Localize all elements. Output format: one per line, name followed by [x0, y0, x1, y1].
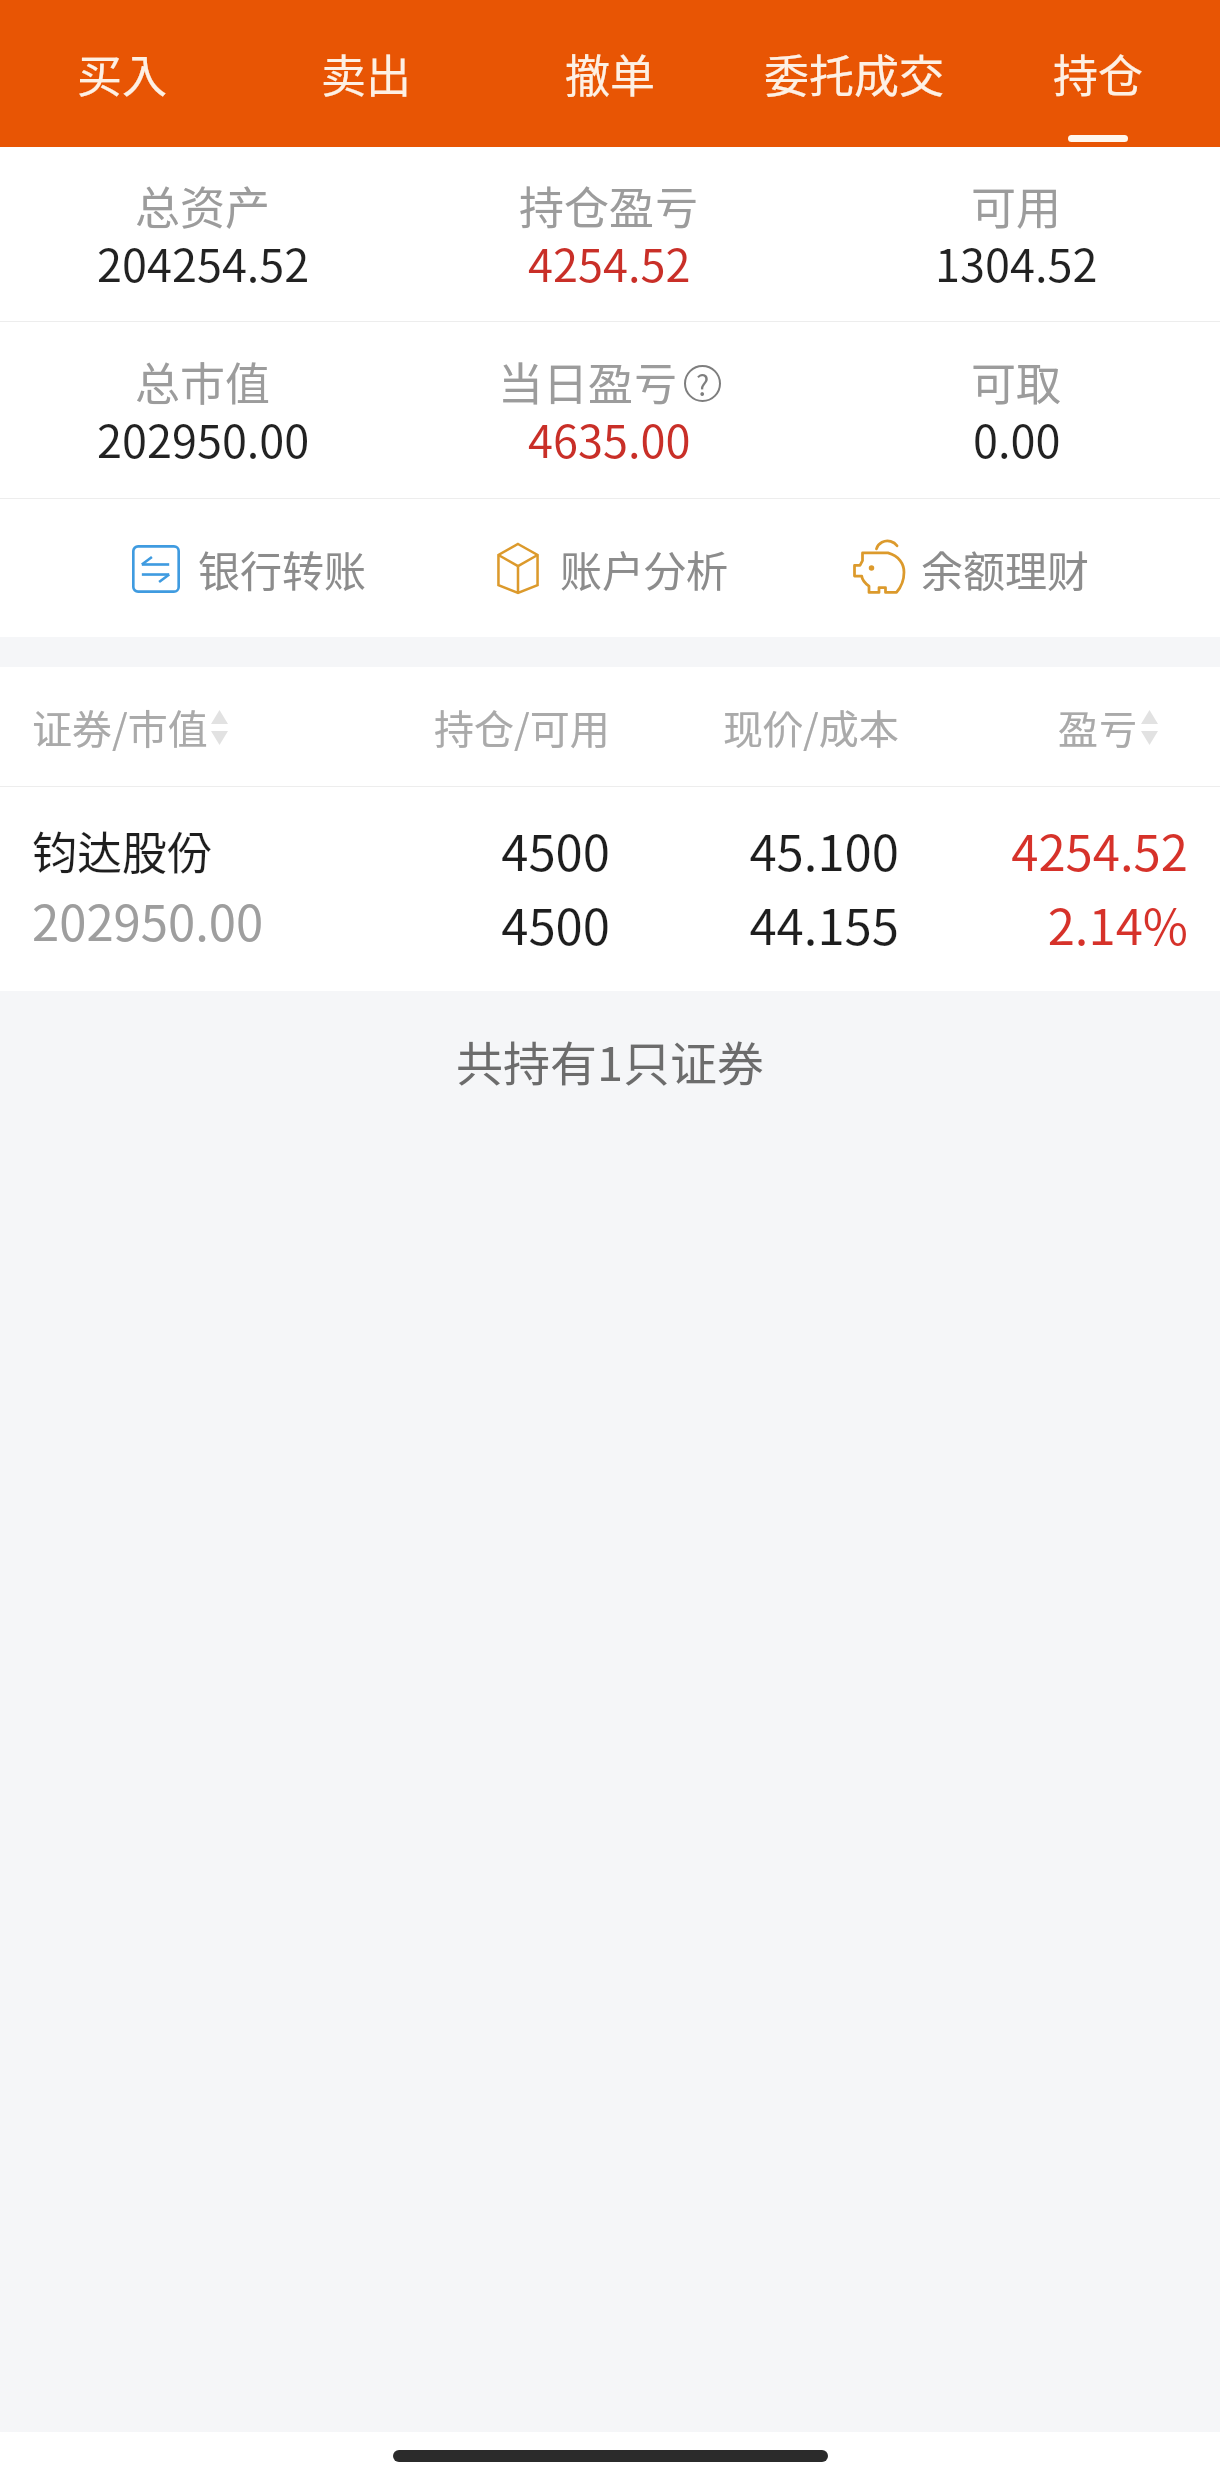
- staticText: 余额理财: [921, 538, 1090, 599]
- staticText: 2.14%: [1047, 888, 1188, 959]
- button[interactable]: 可取: [813, 322, 1220, 498]
- other: 说明: [684, 365, 721, 402]
- staticText: 202950.00: [97, 406, 310, 471]
- button[interactable]: 银行转账: [131, 499, 367, 637]
- other: 银行转账: [132, 545, 180, 592]
- staticText: 总市值: [135, 349, 271, 414]
- button[interactable]: 持仓: [976, 0, 1220, 147]
- button[interactable]: 总市值: [0, 322, 406, 498]
- staticText: 委托成交: [764, 41, 945, 106]
- staticText: 1304.52: [935, 230, 1098, 295]
- button[interactable]: 卖出: [244, 0, 488, 147]
- staticText: 盈亏: [1058, 698, 1138, 756]
- staticText: 4500: [501, 814, 610, 885]
- staticText: 0.00: [973, 406, 1061, 471]
- other: 排序: [211, 710, 228, 745]
- button[interactable]: 可用: [813, 147, 1220, 321]
- other: 账户分析: [495, 543, 541, 594]
- staticText: 持仓: [1053, 41, 1144, 106]
- staticText: 账户分析: [560, 538, 729, 599]
- other: 余额理财: [854, 542, 904, 594]
- staticText: 共持有1只证券: [456, 1026, 765, 1094]
- button[interactable]: 余额理财: [854, 499, 1090, 637]
- button[interactable]: 账户分析: [493, 499, 729, 637]
- staticText: 现价/成本: [723, 698, 899, 756]
- staticText: 4254.52: [1011, 814, 1188, 885]
- staticText: ?: [696, 364, 710, 401]
- staticText: 可用: [971, 173, 1062, 238]
- staticText: 撤单: [565, 41, 656, 106]
- staticText: 证券/市值: [32, 698, 208, 756]
- staticText: 可取: [971, 349, 1062, 414]
- button[interactable]: 持仓盈亏: [406, 147, 813, 321]
- button[interactable]: 总资产: [0, 147, 406, 321]
- staticText: 4254.52: [528, 230, 691, 295]
- staticText: 44.155: [749, 888, 899, 959]
- button[interactable]: 钧达股份: [0, 787, 1220, 991]
- staticText: 4635.00: [528, 406, 691, 471]
- staticText: 202950.00: [32, 884, 264, 955]
- staticText: 4500: [501, 888, 610, 959]
- staticText: 买入: [77, 41, 168, 106]
- staticText: 卖出: [321, 41, 412, 106]
- staticText: 当日盈亏: [498, 349, 679, 414]
- staticText: 总资产: [135, 173, 271, 238]
- staticText: 持仓/可用: [434, 698, 610, 756]
- button[interactable]: 买入: [0, 0, 244, 147]
- button[interactable]: 撤单: [488, 0, 732, 147]
- staticText: 钧达股份: [32, 818, 213, 883]
- staticText: 45.100: [749, 814, 899, 885]
- staticText: 持仓盈亏: [519, 173, 700, 238]
- staticText: 204254.52: [97, 230, 310, 295]
- button[interactable]: 当日盈亏: [406, 322, 813, 498]
- staticText: 银行转账: [198, 538, 367, 599]
- button[interactable]: 委托成交: [732, 0, 976, 147]
- other: 排序: [1141, 710, 1158, 745]
